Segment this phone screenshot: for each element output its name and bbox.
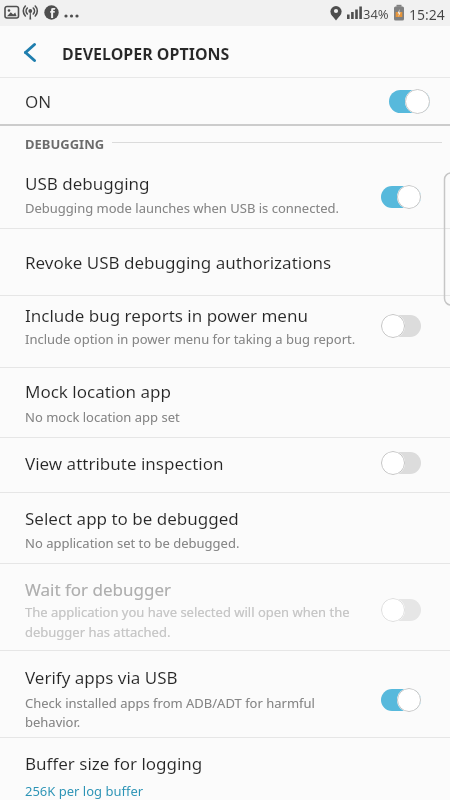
staticText: Wait for debugger [25,578,172,601]
button[interactable]: Verify apps via USB [0,650,450,737]
staticText: DEBUGGING [25,135,105,153]
button[interactable]: Select app to be debugged [0,492,450,563]
button[interactable]: Mock location app [0,367,450,437]
staticText: 34% [363,5,389,23]
button[interactable]: View attribute inspection [0,437,450,492]
button[interactable] [0,26,50,78]
staticText: Buffer size for logging [25,752,203,775]
staticText: Mock location app [25,380,171,403]
staticText: View attribute inspection [25,452,224,475]
staticText: No application set to be debugged. [25,534,240,552]
button[interactable]: Buffer size for logging [0,737,450,800]
staticText: Include bug reports in power menu [25,304,308,327]
staticText: DEVELOPER OPTIONS [62,43,230,65]
staticText: ON [25,90,52,113]
button[interactable]: USB debugging [0,158,450,228]
staticText: Include option in power menu for taking … [25,330,356,348]
staticText: USB debugging [25,172,150,195]
button[interactable]: Include bug reports in power menu [0,295,450,367]
button[interactable]: Wait for debugger [0,563,450,650]
staticText: 256K per log buffer [25,782,144,800]
button[interactable]: Revoke USB debugging authorizations [0,228,450,295]
staticText: Debugging mode launches when USB is conn… [25,199,339,217]
staticText: f [50,5,55,21]
staticText: The application you have selected will o… [25,603,350,641]
staticText: Revoke USB debugging authorizations [25,251,332,274]
staticText: Check installed apps from ADB/ADT for ha… [25,694,315,731]
button[interactable]: ON [0,78,450,126]
staticText: Select app to be debugged [25,507,239,530]
staticText: Verify apps via USB [25,666,178,689]
staticText: No mock location app set [25,408,180,426]
staticText: 15:24 [409,5,445,24]
